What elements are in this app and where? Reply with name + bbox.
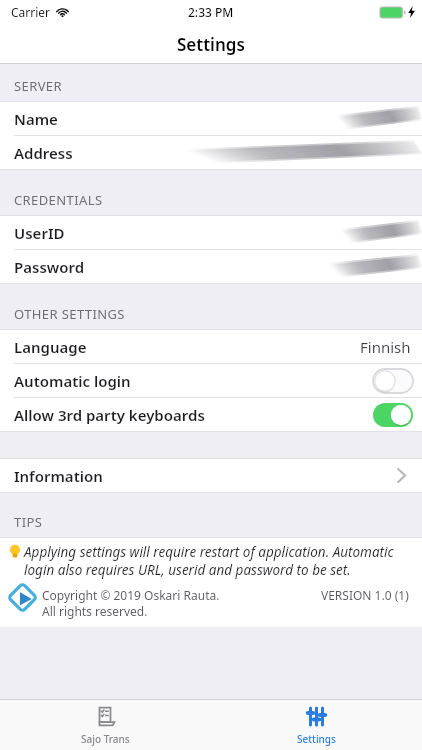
button[interactable]: Automatic login (0, 364, 422, 397)
staticText: 2:33 PM (188, 4, 234, 20)
button[interactable]: Sajo Trans (0, 700, 211, 750)
staticText: CREDENTIALS (14, 191, 103, 209)
staticText: Language (14, 337, 87, 357)
staticText: TIPS (14, 513, 43, 531)
staticText: Allow 3rd party keyboards (14, 405, 205, 425)
button[interactable]: UserID (0, 216, 422, 249)
staticText: Applying settings will require restart o… (24, 543, 408, 579)
staticText: SERVER (14, 77, 62, 95)
button[interactable]: Password (0, 250, 422, 283)
button[interactable]: Allow 3rd party keyboards (0, 398, 422, 431)
staticText: Settings (297, 732, 336, 746)
staticText: Carrier (11, 4, 51, 20)
staticText: Copyright © 2019 Oskari Rauta. (42, 587, 220, 603)
staticText: Automatic login (14, 371, 131, 391)
button[interactable]: Name (0, 102, 422, 135)
button[interactable]: Allow 3rd party keyboards (373, 403, 413, 427)
staticText: Finnish (360, 337, 411, 357)
staticText: Sajo Trans (81, 732, 130, 746)
button[interactable]: Language (0, 330, 422, 363)
staticText: VERSION 1.0 (1) (321, 587, 409, 603)
button[interactable]: Information (0, 459, 422, 492)
button[interactable]: Automatic login (373, 369, 413, 393)
button[interactable]: Address (0, 136, 422, 169)
staticText: Password (14, 257, 85, 277)
staticText: Information (14, 466, 103, 486)
staticText: All rights reserved. (42, 603, 148, 619)
button[interactable]: Settings (211, 700, 422, 750)
staticText: Name (14, 109, 58, 129)
staticText: UserID (14, 223, 65, 243)
staticText: Address (14, 143, 73, 163)
staticText: OTHER SETTINGS (14, 305, 125, 323)
staticText: Settings (177, 33, 245, 56)
